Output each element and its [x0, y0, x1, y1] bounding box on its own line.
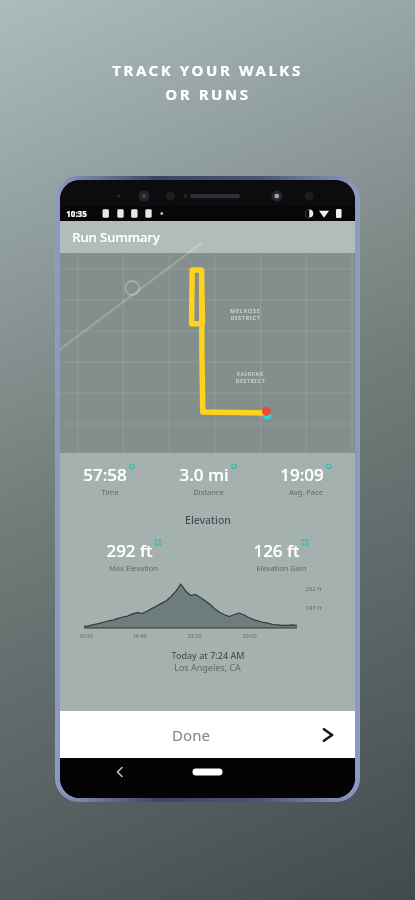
button[interactable]: Home: [186, 758, 230, 784]
button[interactable]: 126 ft: [207, 539, 355, 573]
staticText: Avg. Pace: [289, 487, 323, 497]
button[interactable]: 57:58: [60, 463, 159, 497]
staticText: MELROSE: [230, 307, 261, 314]
button[interactable]: Back: [105, 758, 139, 792]
staticText: TRACK YOUR WALKS: [112, 60, 303, 80]
staticText: 10:35: [66, 208, 87, 219]
staticText: 16:40: [132, 632, 147, 639]
staticText: 292 ft: [106, 539, 153, 562]
staticText: 19:09: [280, 463, 324, 486]
staticText: 33:20: [187, 632, 202, 639]
button[interactable]: 19:09: [257, 463, 355, 497]
staticText: Time: [101, 487, 119, 497]
staticText: Los Angeles, CA: [174, 661, 241, 673]
staticText: DISTRICT: [235, 377, 266, 384]
staticText: Elevation: [185, 513, 231, 527]
staticText: Done: [172, 725, 210, 745]
staticText: 197 ft: [305, 604, 322, 612]
button[interactable]: Done: [60, 711, 355, 758]
staticText: Max Elevation: [109, 563, 158, 573]
staticText: 262 ft: [305, 585, 322, 593]
button[interactable]: Route map: [60, 253, 355, 453]
staticText: 10:00: [78, 632, 93, 639]
staticText: FAIRFAX: [237, 370, 264, 377]
staticText: Today at 7:24 AM: [171, 649, 245, 661]
staticText: 3.0 mi: [179, 463, 229, 486]
staticText: 57:58: [83, 463, 127, 486]
staticText: Run Summary: [72, 228, 160, 246]
staticText: OR RUNS: [165, 84, 251, 104]
staticText: 126 ft: [253, 539, 300, 562]
button[interactable]: 3.0 mi: [159, 463, 257, 497]
staticText: 50:00: [242, 632, 257, 639]
staticText: DISTRICT: [230, 314, 261, 321]
staticText: Elevation Gain: [256, 563, 307, 573]
button[interactable]: 292 ft: [60, 539, 207, 573]
staticText: Distance: [193, 487, 224, 497]
